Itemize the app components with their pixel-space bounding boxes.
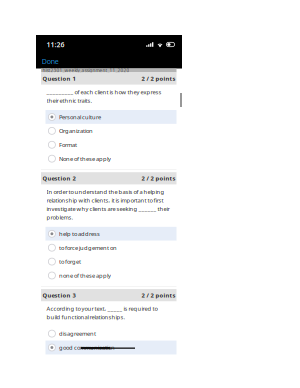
staticText: Format xyxy=(59,141,77,149)
staticText: Question 2 xyxy=(42,174,75,182)
staticText: to forget xyxy=(59,258,81,265)
staticText: Done xyxy=(42,56,59,66)
button[interactable]: to force judgement on xyxy=(45,241,176,255)
staticText: help to address xyxy=(59,230,100,238)
button[interactable]: Done xyxy=(36,54,182,68)
staticText: In order to understand the basis of a he… xyxy=(46,188,169,221)
button[interactable]: None of these apply xyxy=(45,152,176,166)
button[interactable]: to forget xyxy=(45,255,176,268)
staticText: 11:26 xyxy=(47,40,65,49)
button[interactable]: help to address xyxy=(45,227,176,241)
staticText: Question 1 xyxy=(42,75,75,82)
staticText: good communication xyxy=(59,344,115,351)
button[interactable]: Format xyxy=(45,138,176,152)
staticText: None of these apply xyxy=(59,155,111,163)
staticText: none of these apply xyxy=(59,272,111,279)
staticText: Personal culture xyxy=(59,113,101,121)
staticText: 2 / 2 points xyxy=(141,174,175,182)
staticText: Question 3 xyxy=(42,291,75,299)
staticText: disagreement xyxy=(59,330,96,337)
staticText: 2 / 2 points xyxy=(141,75,175,82)
staticText: Organization xyxy=(59,127,93,135)
staticText: hist2301_weekly_assignment_11_2020 xyxy=(42,67,129,74)
button[interactable]: disagreement xyxy=(45,327,176,341)
button[interactable]: good communication xyxy=(45,341,176,354)
staticText: to force judgement on xyxy=(59,244,117,252)
staticText: _________ of each client is how they exp… xyxy=(46,88,161,104)
button[interactable]: Organization xyxy=(45,124,176,138)
staticText: According to your text, _____ is require… xyxy=(46,305,157,321)
staticText: 2 / 2 points xyxy=(141,291,175,299)
button[interactable]: Personal culture xyxy=(45,110,176,124)
button[interactable]: none of these apply xyxy=(45,268,176,282)
